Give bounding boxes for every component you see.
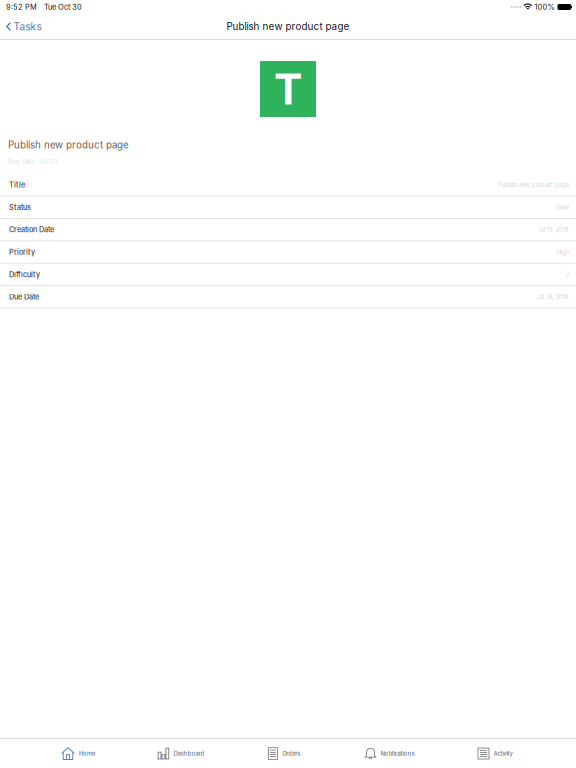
button[interactable]: Dashboard [130,739,232,767]
staticText: Publish new product page [226,20,349,32]
staticText: 100% [534,2,554,11]
button[interactable]: Creation Date [0,219,576,241]
button[interactable]: Activity [443,739,547,767]
staticText: Publish new product page [8,139,129,151]
staticText: T [274,63,302,115]
staticText: High [557,249,569,255]
staticText: 9:52 PM [6,2,37,11]
staticText: Tasks [13,20,41,33]
staticText: Due Date [8,158,35,165]
staticText: Difficulty [9,270,40,279]
staticText: Title [9,180,25,189]
button[interactable]: Title [0,174,576,197]
staticText: Notifications [380,750,414,757]
staticText: Jul 29, 2018 [537,293,569,300]
button[interactable]: Orders [232,739,336,767]
staticText: Creation Date [9,225,54,234]
staticText: Jul 15, 2018 [538,226,569,233]
button[interactable]: Difficulty [0,264,576,286]
staticText: Dashboard [173,750,204,757]
button[interactable]: Home [26,739,130,767]
staticText: Status [9,203,31,212]
staticText: Publish new product page [498,181,569,188]
button[interactable]: Tasks [0,14,47,39]
staticText: Jul 23 [39,158,58,165]
staticText: Home [79,750,95,757]
staticText: 2 [566,271,569,278]
staticText: Orders [282,750,300,757]
staticText: Priority [9,248,35,257]
staticText: Activity [493,750,512,757]
staticText: Done [556,204,569,211]
button[interactable]: Status [0,197,576,219]
staticText: Due Date [9,292,39,301]
button[interactable]: Priority [0,241,576,264]
button[interactable]: Due Date [0,286,576,309]
staticText: Tue Oct 30 [44,2,82,11]
button[interactable]: Notifications [336,739,443,767]
